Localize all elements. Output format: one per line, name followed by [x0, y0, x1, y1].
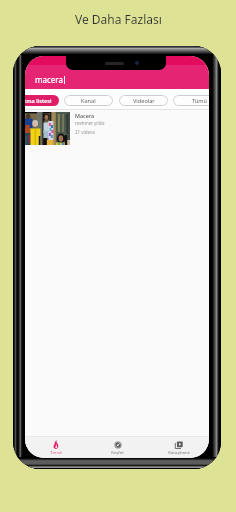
staticText: Oynatma listesi: [25, 97, 52, 105]
staticText: Macera: [75, 112, 95, 119]
staticText: Keşfet: [111, 450, 124, 456]
staticText: Videolar: [133, 97, 155, 105]
staticText: Kütüphane: [168, 450, 190, 456]
button[interactable]: Kütüphane: [148, 437, 209, 458]
staticText: macera: [35, 74, 63, 85]
button[interactable]: macera: [35, 74, 65, 85]
staticText: Trend: [50, 450, 62, 456]
button[interactable]: Macera: [25, 112, 209, 145]
staticText: Tümü: [192, 97, 207, 105]
button[interactable]: Tümü: [173, 95, 209, 106]
button[interactable]: Keşfet: [87, 437, 148, 458]
staticText: Ve Daha Fazlası: [75, 11, 162, 27]
button[interactable]: Oynatma listesi: [25, 95, 59, 106]
button[interactable]: Trend: [25, 437, 87, 458]
staticText: Kanal: [81, 97, 96, 105]
staticText: 21 videos: [75, 129, 95, 135]
button[interactable]: Kanal: [64, 95, 113, 106]
staticText: mehmet yıldız: [75, 120, 105, 126]
button[interactable]: Videolar: [119, 95, 168, 106]
